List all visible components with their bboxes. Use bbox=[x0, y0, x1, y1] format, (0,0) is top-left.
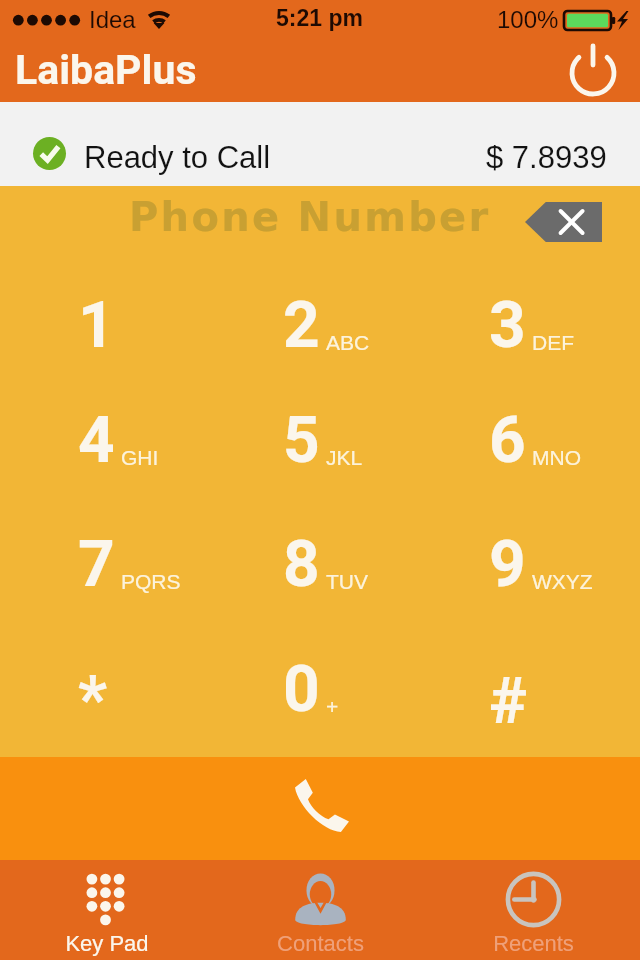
staticText: 0 bbox=[283, 652, 320, 727]
button[interactable]: 3 bbox=[448, 265, 640, 383]
staticText: Recents bbox=[493, 931, 574, 956]
staticText: 9 bbox=[489, 527, 526, 602]
button[interactable]: 8 bbox=[242, 504, 447, 622]
button[interactable]: Call bbox=[0, 757, 640, 860]
staticText: WXYZ bbox=[532, 570, 593, 593]
staticText: ABC bbox=[326, 331, 370, 354]
button[interactable]: Contacts bbox=[214, 860, 427, 960]
button[interactable]: Recents bbox=[427, 860, 640, 960]
button[interactable]: * bbox=[37, 629, 242, 747]
staticText: + bbox=[326, 695, 339, 718]
button[interactable]: Key Pad bbox=[0, 860, 214, 960]
staticText: GHI bbox=[121, 446, 159, 469]
staticText: 2 bbox=[283, 288, 320, 363]
staticText: 5:21 pm bbox=[276, 5, 363, 31]
staticText: PQRS bbox=[121, 570, 181, 593]
button[interactable]: 0 bbox=[242, 629, 447, 747]
button[interactable]: 4 bbox=[37, 380, 242, 498]
staticText: JKL bbox=[326, 446, 363, 469]
staticText: MNO bbox=[532, 446, 581, 469]
staticText: Idea bbox=[89, 6, 136, 33]
staticText: 6 bbox=[489, 403, 526, 478]
staticText: 4 bbox=[78, 403, 115, 478]
staticText: DEF bbox=[532, 331, 574, 354]
staticText: Phone Number bbox=[129, 194, 491, 241]
staticText: 8 bbox=[283, 527, 320, 602]
button[interactable]: 6 bbox=[448, 380, 640, 498]
button[interactable]: 9 bbox=[448, 504, 640, 622]
staticText: 1 bbox=[78, 288, 115, 363]
staticText: 5 bbox=[283, 403, 320, 478]
staticText: LaibaPlus bbox=[15, 46, 197, 94]
staticText: 7 bbox=[78, 527, 115, 602]
button[interactable]: 5 bbox=[242, 380, 447, 498]
staticText: $ 7.8939 bbox=[486, 140, 607, 175]
staticText: * bbox=[78, 662, 108, 737]
staticText: Ready to Call bbox=[84, 140, 271, 175]
button[interactable]: # bbox=[448, 629, 640, 747]
button[interactable]: 7 bbox=[37, 504, 242, 622]
staticText: 3 bbox=[489, 288, 526, 363]
button[interactable]: Backspace bbox=[525, 202, 602, 242]
staticText: Key Pad bbox=[65, 931, 149, 956]
staticText: Contacts bbox=[277, 931, 364, 956]
staticText: TUV bbox=[326, 570, 368, 593]
staticText: # bbox=[489, 664, 528, 739]
staticText: 100% bbox=[497, 6, 559, 33]
button[interactable]: 1 bbox=[37, 265, 242, 383]
button[interactable]: 2 bbox=[242, 265, 447, 383]
button[interactable]: Power bbox=[569, 45, 617, 93]
button[interactable]: Ready to Call bbox=[0, 102, 640, 186]
